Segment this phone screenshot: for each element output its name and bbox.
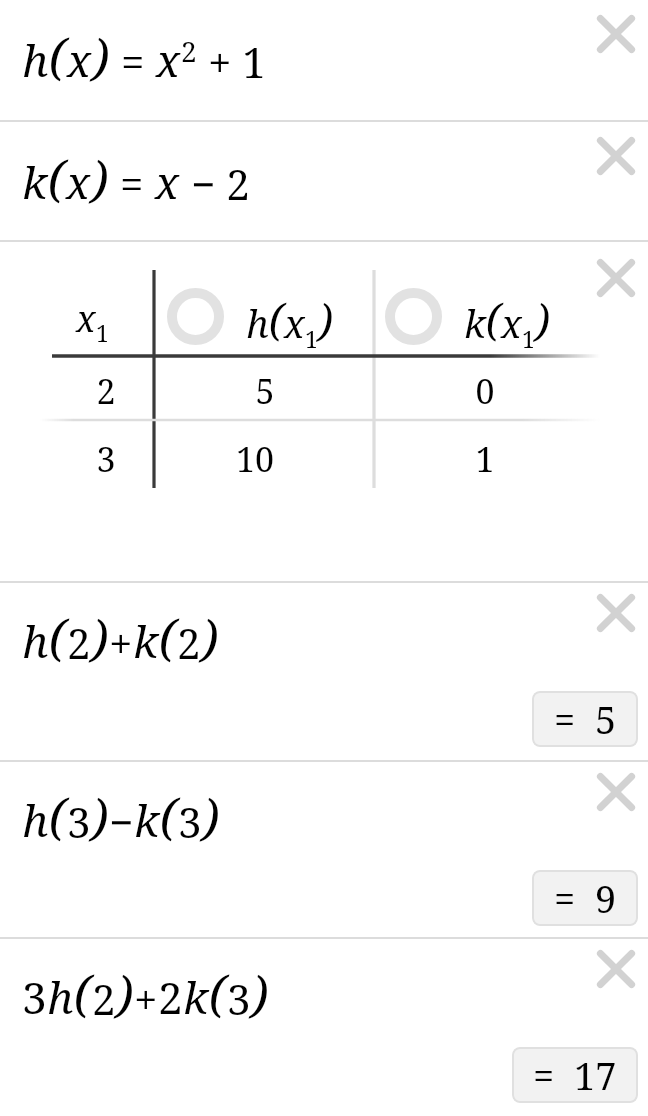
button[interactable]: = 17 <box>512 1047 638 1103</box>
button[interactable]: h <box>0 762 648 937</box>
staticText: x <box>67 30 92 90</box>
staticText: x <box>76 294 96 343</box>
button[interactable]: Delete expression <box>590 943 642 995</box>
staticText: 0 <box>435 368 535 414</box>
staticText: 2 <box>92 970 116 1027</box>
staticText: ( <box>160 782 178 850</box>
staticText: 2 <box>181 32 197 70</box>
staticText: x <box>284 297 305 349</box>
staticText: ( <box>48 144 66 212</box>
staticText: x <box>155 152 180 212</box>
staticText: 1 <box>305 323 318 354</box>
staticText: 10 <box>205 436 305 482</box>
staticText: ) <box>535 290 550 349</box>
staticText: ( <box>269 290 284 349</box>
staticText: ( <box>159 603 177 671</box>
staticText: ) <box>91 782 109 850</box>
staticText: x <box>501 297 522 349</box>
staticText: ( <box>209 959 227 1027</box>
staticText: 3 <box>22 967 47 1027</box>
staticText: − <box>109 793 134 850</box>
button[interactable]: Toggle column visibility <box>385 288 442 345</box>
staticText: 1 <box>522 323 535 354</box>
staticText: ) <box>91 144 109 212</box>
staticText: 5 <box>215 368 315 414</box>
button[interactable]: Toggle column visibility <box>167 288 224 345</box>
staticText: k <box>22 152 48 212</box>
staticText: 1 <box>435 436 535 482</box>
staticText: h <box>246 297 269 349</box>
staticText: + 1 <box>197 33 266 90</box>
staticText: h <box>22 790 49 850</box>
staticText: ( <box>74 959 92 1027</box>
staticText: ( <box>49 22 67 90</box>
staticText: = 5 <box>554 693 617 745</box>
button[interactable]: k <box>0 122 648 240</box>
staticText: ( <box>49 603 67 671</box>
staticText: h <box>22 611 49 671</box>
staticText: x <box>156 30 181 90</box>
button[interactable]: Delete expression <box>590 130 642 182</box>
staticText: ) <box>251 959 269 1027</box>
staticText: ( <box>486 290 501 349</box>
staticText: − 2 <box>180 155 250 212</box>
staticText: h <box>47 967 74 1027</box>
staticText: ) <box>202 782 220 850</box>
staticText: = 9 <box>554 872 617 924</box>
staticText: ) <box>318 290 333 349</box>
staticText: h <box>22 30 49 90</box>
button[interactable]: h <box>0 583 648 760</box>
staticText: ( <box>49 782 67 850</box>
staticText: ) <box>201 603 219 671</box>
staticText: k <box>183 967 209 1027</box>
staticText: 3 <box>67 793 91 850</box>
staticText: k <box>464 297 486 349</box>
staticText: 3 <box>56 436 156 482</box>
staticText: ) <box>92 22 110 90</box>
staticText: 3 <box>178 793 202 850</box>
button[interactable]: Delete expression <box>590 8 642 60</box>
staticText: 2 <box>56 368 156 414</box>
staticText: x <box>66 152 91 212</box>
button[interactable]: h <box>0 0 648 120</box>
staticText: k <box>133 611 159 671</box>
staticText: = 17 <box>533 1049 617 1101</box>
staticText: = <box>109 155 155 212</box>
staticText: 2 <box>158 967 183 1027</box>
button[interactable]: Delete expression <box>590 587 642 639</box>
staticText: 3 <box>227 970 251 1027</box>
staticText: ) <box>91 603 109 671</box>
staticText: = <box>110 33 156 90</box>
button[interactable]: 3 <box>0 939 648 1116</box>
staticText: 1 <box>96 317 109 348</box>
button[interactable]: = 5 <box>532 691 638 747</box>
staticText: + <box>134 970 158 1027</box>
staticText: ) <box>116 959 134 1027</box>
button[interactable]: Delete expression <box>590 252 642 304</box>
button[interactable]: Delete expression <box>590 766 642 818</box>
staticText: + <box>109 614 133 671</box>
button[interactable]: = 9 <box>532 870 638 926</box>
staticText: 2 <box>67 614 91 671</box>
staticText: 2 <box>177 614 201 671</box>
staticText: k <box>134 790 160 850</box>
